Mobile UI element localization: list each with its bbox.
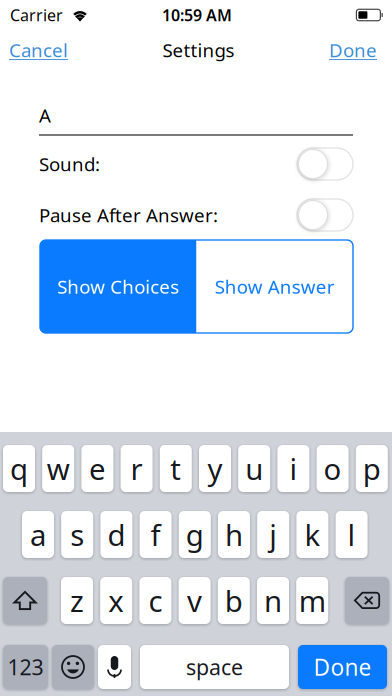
staticText: Show Answer (215, 274, 335, 299)
button[interactable]: z (61, 577, 93, 624)
staticText: p (363, 449, 381, 488)
button[interactable]: f (140, 511, 172, 558)
button[interactable]: Toggle (297, 199, 353, 231)
button[interactable]: j (257, 511, 289, 558)
staticText: c (148, 581, 162, 620)
staticText: u (245, 449, 263, 488)
staticText: i (289, 449, 297, 488)
staticText: y (207, 449, 222, 488)
staticText: Sound: (39, 152, 100, 176)
button[interactable]: Shift (3, 577, 47, 624)
staticText: 10:59 AM (162, 4, 232, 26)
button[interactable]: h (218, 511, 250, 558)
staticText: Show Choices (57, 274, 179, 299)
staticText: m (299, 581, 326, 620)
staticText: Pause After Answer: (39, 203, 218, 227)
staticText: Carrier (10, 4, 63, 26)
button[interactable]: s (61, 511, 93, 558)
staticText: l (348, 515, 356, 554)
button[interactable]: Emoji (52, 645, 94, 689)
staticText: A (39, 103, 51, 128)
staticText: d (107, 515, 125, 554)
button[interactable]: a (22, 511, 54, 558)
staticText: e (89, 449, 106, 488)
button[interactable]: t (160, 445, 192, 492)
button[interactable]: w (42, 445, 74, 492)
button[interactable]: v (179, 577, 211, 624)
staticText: q (10, 449, 28, 488)
button[interactable]: d (100, 511, 132, 558)
staticText: z (70, 581, 84, 620)
button[interactable]: p (356, 445, 388, 492)
staticText: t (170, 449, 181, 488)
button[interactable]: space (140, 645, 289, 689)
button[interactable]: e (81, 445, 113, 492)
staticText: g (186, 515, 204, 554)
button[interactable]: y (199, 445, 231, 492)
button[interactable]: Done (327, 31, 379, 69)
staticText: x (108, 581, 124, 620)
staticText: Done (329, 38, 377, 62)
button[interactable]: 123 (3, 645, 48, 689)
staticText: Cancel (9, 38, 68, 62)
staticText: 123 (7, 653, 43, 681)
button[interactable]: n (257, 577, 289, 624)
staticText: b (225, 581, 243, 620)
button[interactable]: Dictate (98, 645, 131, 689)
staticText: o (324, 449, 342, 488)
staticText: w (47, 449, 70, 488)
button[interactable]: Show Answer (196, 240, 353, 333)
button[interactable]: b (218, 577, 250, 624)
button[interactable]: c (139, 577, 171, 624)
button[interactable]: o (317, 445, 349, 492)
button[interactable]: q (3, 445, 35, 492)
button[interactable]: Delete (345, 577, 389, 624)
staticText: n (264, 581, 282, 620)
staticText: a (30, 515, 46, 554)
staticText: Settings (162, 38, 234, 62)
button[interactable]: i (277, 445, 309, 492)
button[interactable]: g (179, 511, 211, 558)
button[interactable]: Done (298, 645, 387, 689)
staticText: h (225, 515, 243, 554)
button[interactable]: u (238, 445, 270, 492)
button[interactable]: Cancel (7, 31, 70, 69)
button[interactable]: Toggle (297, 148, 353, 180)
staticText: v (187, 581, 202, 620)
button[interactable]: Show Choices (40, 240, 196, 333)
staticText: space (186, 653, 243, 681)
staticText: k (304, 515, 320, 554)
button[interactable]: x (100, 577, 132, 624)
button[interactable]: r (121, 445, 153, 492)
staticText: s (70, 515, 84, 554)
staticText: r (131, 449, 143, 488)
staticText: j (269, 515, 277, 554)
staticText: f (151, 515, 161, 554)
button[interactable]: l (336, 511, 368, 558)
button[interactable]: k (296, 511, 328, 558)
button[interactable]: m (296, 577, 328, 624)
staticText: Done (313, 652, 371, 682)
